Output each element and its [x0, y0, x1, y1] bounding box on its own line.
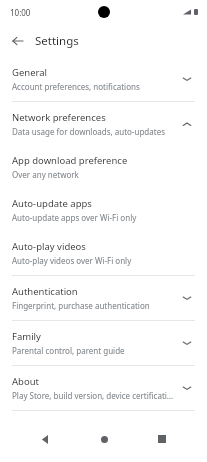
staticText: Auto-play videos [12, 240, 86, 253]
staticText: Play Store, build version, device certif… [12, 390, 175, 401]
button[interactable]: Auto-update apps [0, 189, 207, 232]
staticText: Data usage for downloads, auto-updates [12, 126, 165, 137]
button[interactable]: Back [31, 425, 59, 453]
button[interactable]: General [0, 58, 207, 101]
staticText: App download preference [12, 154, 128, 167]
button[interactable]: Network preferences [0, 102, 207, 146]
button[interactable]: About [0, 366, 207, 410]
button[interactable]: Auto-play videos [0, 232, 207, 275]
staticText: Over any network [12, 169, 79, 180]
staticText: Account preferences, notifications [12, 81, 140, 92]
staticText: About [12, 375, 39, 388]
staticText: Family [12, 330, 41, 343]
staticText: Auto-update apps [12, 197, 92, 210]
button[interactable]: Recent apps [148, 425, 176, 453]
staticText: Auto-update apps over Wi-Fi only [12, 212, 137, 223]
staticText: Auto-play videos over Wi-Fi only [12, 255, 132, 266]
button[interactable]: Family [0, 321, 207, 365]
button[interactable]: Home [90, 425, 118, 453]
staticText: General [12, 66, 48, 79]
button[interactable]: App download preference [0, 146, 207, 189]
staticText: Authentication [12, 285, 78, 298]
staticText: 10:00 [10, 7, 31, 18]
button[interactable]: Authentication [0, 276, 207, 320]
staticText: Fingerprint, purchase authentication [12, 300, 150, 311]
staticText: Parental control, parent guide [12, 345, 125, 356]
staticText: Settings [35, 33, 79, 49]
button[interactable]: Back [8, 31, 28, 51]
staticText: Network preferences [12, 111, 106, 124]
